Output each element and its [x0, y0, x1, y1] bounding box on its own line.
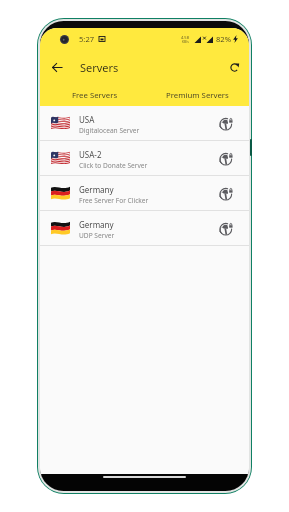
- button[interactable]: Premium Servers: [146, 84, 248, 106]
- button[interactable]: Refresh: [226, 59, 242, 75]
- staticText: USA: [79, 114, 95, 125]
- staticText: Click to Donate Server: [79, 161, 148, 170]
- staticText: 5:27: [79, 34, 95, 44]
- staticText: Free Servers: [72, 90, 118, 101]
- button[interactable]: Germany: [40, 176, 249, 210]
- staticText: Free Server For Clicker: [79, 196, 149, 205]
- button[interactable]: Back: [49, 59, 65, 75]
- staticText: Germany: [79, 184, 114, 195]
- button[interactable]: USA-2: [40, 141, 249, 175]
- button[interactable]: USA: [40, 106, 249, 140]
- staticText: Germany: [79, 219, 114, 230]
- staticText: USA-2: [79, 149, 102, 160]
- staticText: KB/s: [182, 40, 189, 44]
- staticText: 82%: [216, 34, 231, 44]
- staticText: Premium Servers: [166, 90, 229, 101]
- staticText: Servers: [80, 60, 119, 75]
- staticText: UDP Server: [79, 231, 115, 240]
- button[interactable]: Germany: [40, 211, 249, 245]
- staticText: 4.58: [181, 35, 189, 40]
- staticText: Digitalocean Server: [79, 126, 140, 135]
- button[interactable]: Free Servers: [44, 84, 146, 106]
